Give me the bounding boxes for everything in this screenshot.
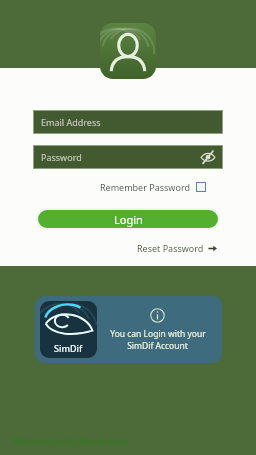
button[interactable]: Email Address: [33, 110, 223, 134]
staticText: Email Address: [41, 116, 101, 128]
staticText: Password: [41, 151, 82, 163]
staticText: Remember Password: [100, 181, 190, 193]
staticText: Reset Password: [137, 242, 204, 254]
staticText: Write to the YorName team: [13, 434, 129, 446]
button[interactable]: Reset Password: [137, 242, 217, 254]
button[interactable]: Account: [100, 23, 156, 79]
button[interactable]: Remember Password: [100, 181, 206, 193]
button[interactable]: Show password: [199, 148, 217, 166]
button[interactable]: Write to the YorName team: [13, 434, 129, 446]
staticText: SimDif Account: [127, 340, 188, 352]
staticText: Login: [114, 212, 143, 227]
other: Info: [150, 308, 165, 323]
button[interactable]: Login: [38, 210, 218, 228]
button[interactable]: SimDif: [35, 296, 222, 363]
staticText: You can Login with your: [110, 328, 206, 340]
staticText: SimDif: [54, 342, 83, 354]
button[interactable]: Password: [33, 145, 223, 169]
